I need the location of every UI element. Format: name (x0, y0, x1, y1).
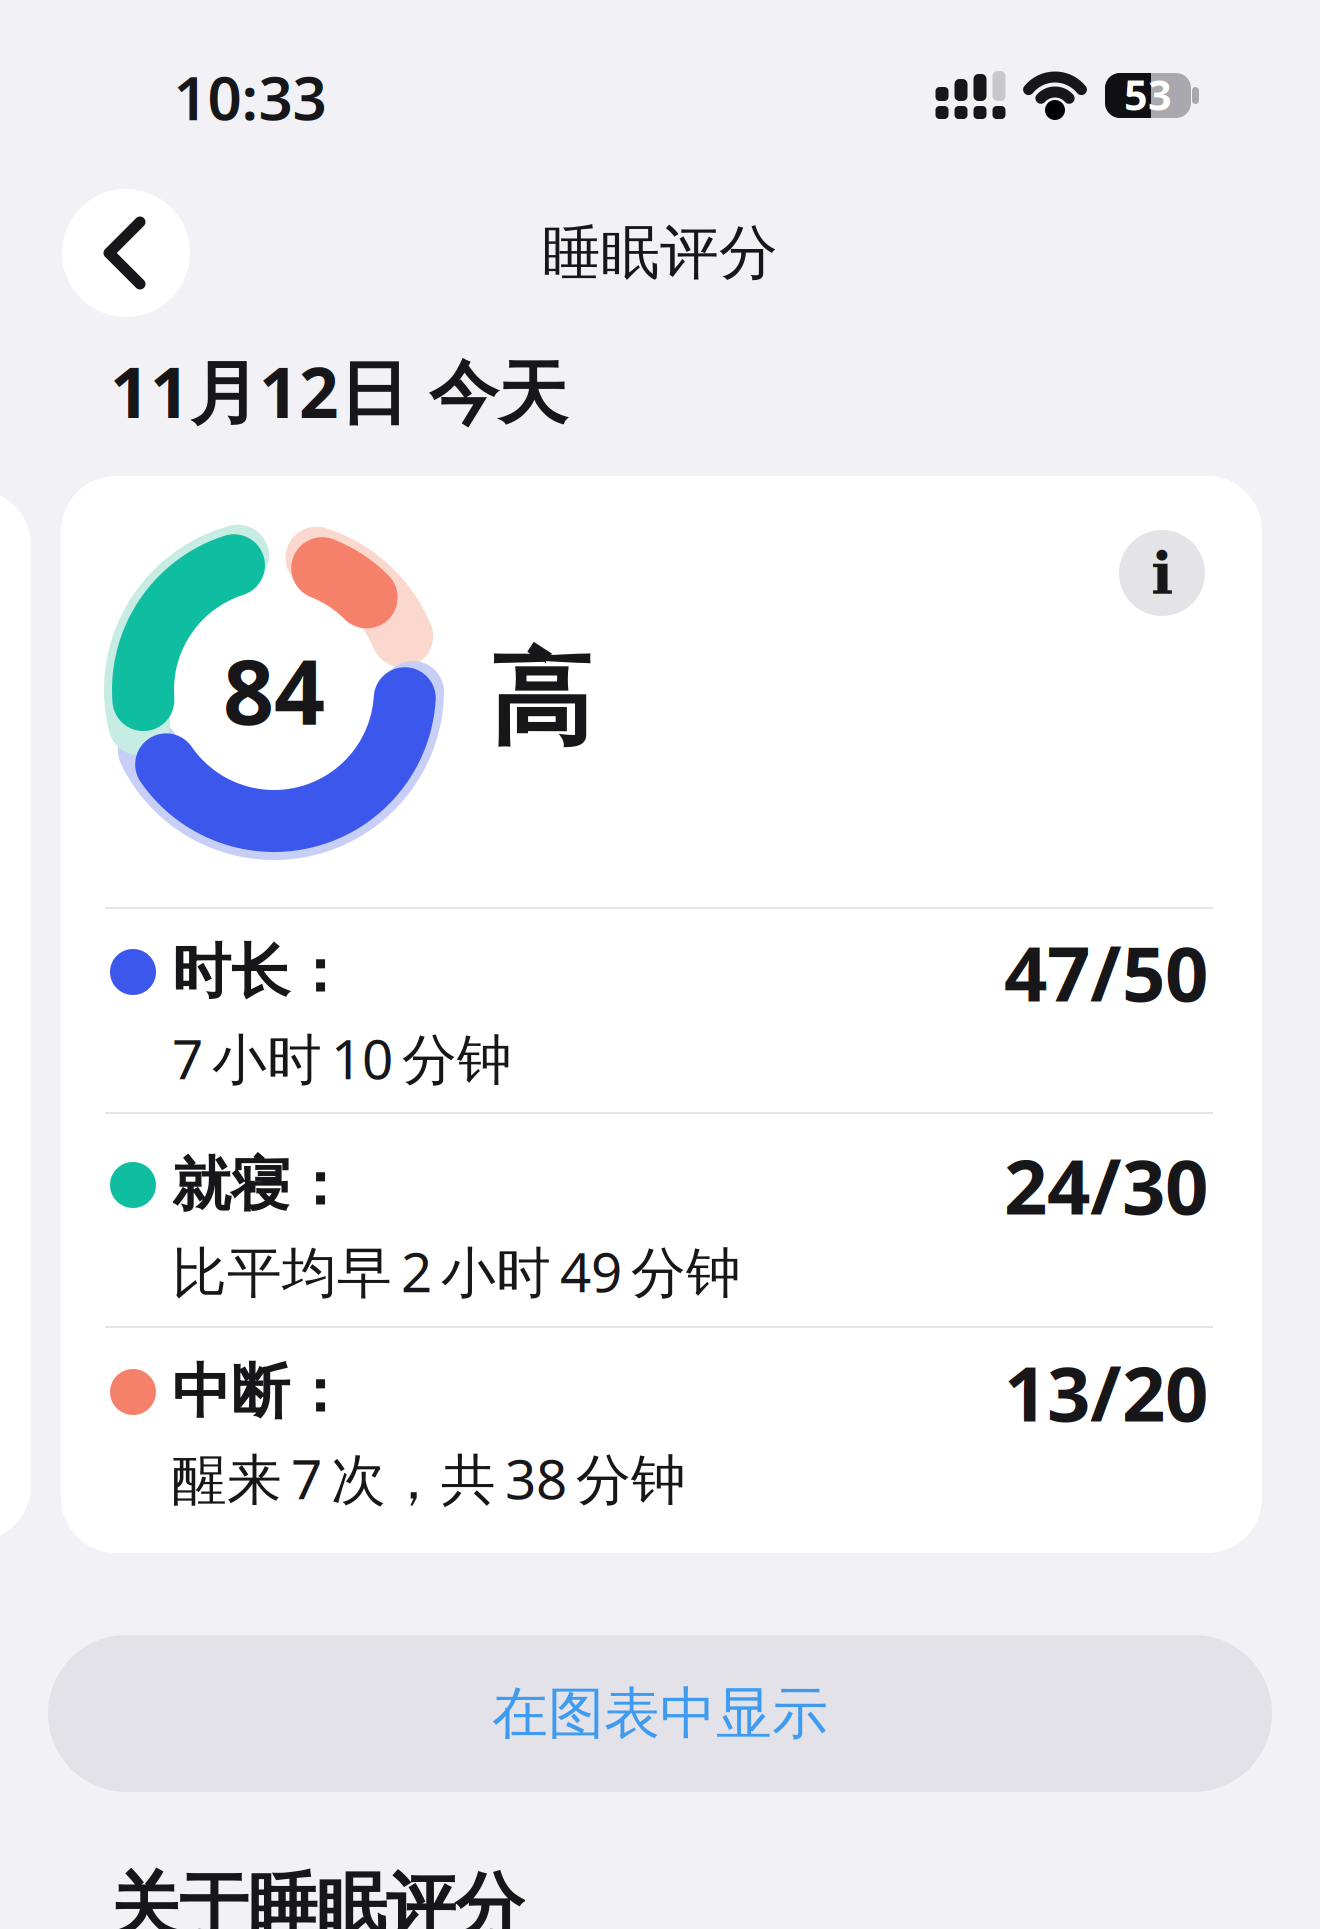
button[interactable]: 返回 (62, 189, 190, 317)
staticText: 高 (489, 637, 592, 763)
staticText: 10:33 (173, 57, 326, 137)
staticText: 47/50 (1004, 921, 1208, 1022)
staticText: 关于睡眠评分 (110, 1863, 524, 1929)
staticText: 睡眠评分 (542, 217, 778, 289)
button[interactable]: 信息 (1119, 530, 1205, 616)
staticText: 53 (1124, 67, 1172, 122)
staticText: 7 小时 10 分钟 (172, 1022, 512, 1094)
staticText: 时长： (172, 936, 349, 1008)
staticText: 就寝： (172, 1149, 349, 1221)
staticText: 醒来 7 次，共 38 分钟 (172, 1442, 686, 1514)
button[interactable]: 在图表中显示 (48, 1635, 1272, 1792)
staticText: i (1151, 538, 1173, 607)
staticText: 84 (223, 631, 325, 749)
staticText: 中断： (172, 1356, 349, 1428)
staticText: 比平均早 2 小时 49 分钟 (172, 1235, 741, 1307)
staticText: 11月12日 今天 (110, 345, 567, 437)
staticText: 24/30 (1004, 1134, 1208, 1235)
staticText: 13/20 (1004, 1341, 1208, 1442)
staticText: 在图表中显示 (492, 1679, 828, 1748)
